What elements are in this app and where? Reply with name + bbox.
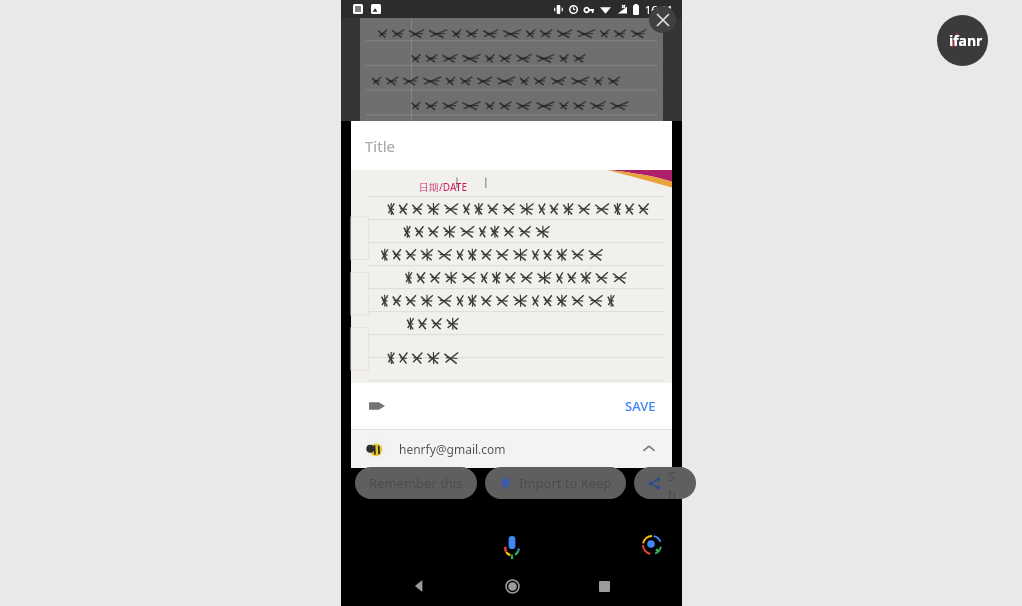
button[interactable]: Share xyxy=(634,467,696,499)
button[interactable]: henrfy@gmail.com xyxy=(351,430,672,468)
button[interactable]: Add label xyxy=(359,388,395,424)
button[interactable]: Close xyxy=(649,6,676,33)
button[interactable]: Voice search xyxy=(492,527,532,567)
staticText: Title xyxy=(365,136,395,156)
button[interactable]: Import to Keep xyxy=(485,467,626,499)
staticText: 16:31 xyxy=(645,2,674,17)
staticText: SAVE xyxy=(625,397,656,415)
staticText: Remember this xyxy=(369,474,463,492)
staticText: henrfy@gmail.com xyxy=(399,441,506,457)
button[interactable]: Title xyxy=(351,121,672,170)
button[interactable]: Google Lens xyxy=(635,528,669,562)
button[interactable]: Back xyxy=(401,568,437,604)
staticText: Import to Keep xyxy=(519,474,612,492)
staticText: Share xyxy=(668,467,682,499)
button[interactable]: Recents xyxy=(586,568,622,604)
staticText: ifanr xyxy=(949,31,983,50)
button[interactable]: SAVE xyxy=(609,387,672,425)
button[interactable]: Home xyxy=(494,568,530,604)
button[interactable]: Remember this xyxy=(355,467,477,499)
staticText: 日期/DATE xyxy=(419,180,467,194)
